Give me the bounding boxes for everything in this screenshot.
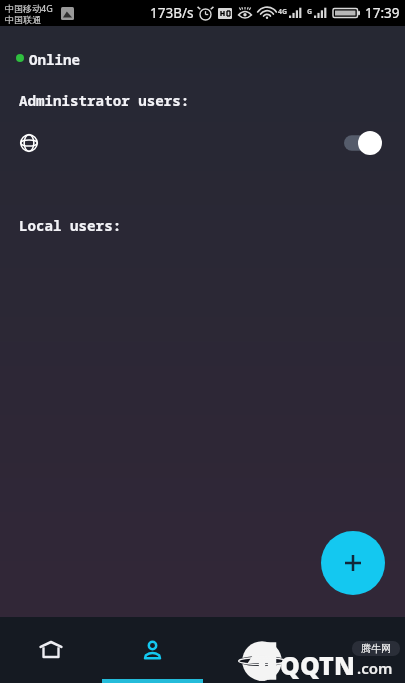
staticText: .com — [357, 658, 393, 678]
staticText: 腾牛网 — [361, 642, 391, 655]
staticText: Online — [29, 50, 81, 66]
staticText: G — [307, 7, 313, 17]
button[interactable]: Tab 4 — [304, 617, 405, 683]
staticText: Administrator users: — [19, 91, 190, 110]
button[interactable]: Toggle administrator user — [344, 130, 382, 156]
staticText: 173B/s — [150, 4, 194, 22]
button[interactable]: Add user — [321, 531, 385, 595]
staticText: 中国移动4G — [5, 2, 53, 14]
staticText: 4G — [278, 7, 288, 17]
staticText: Local users: — [19, 216, 122, 235]
staticText: 中国联通 — [5, 14, 41, 25]
staticText: QQTN — [280, 648, 355, 682]
button[interactable]: Home — [0, 617, 102, 683]
staticText: 17:39 — [365, 4, 400, 22]
button[interactable]: Tab 3 — [203, 617, 304, 683]
button[interactable]: Toggle administrator user — [0, 127, 405, 159]
button[interactable]: Users — [102, 617, 203, 683]
